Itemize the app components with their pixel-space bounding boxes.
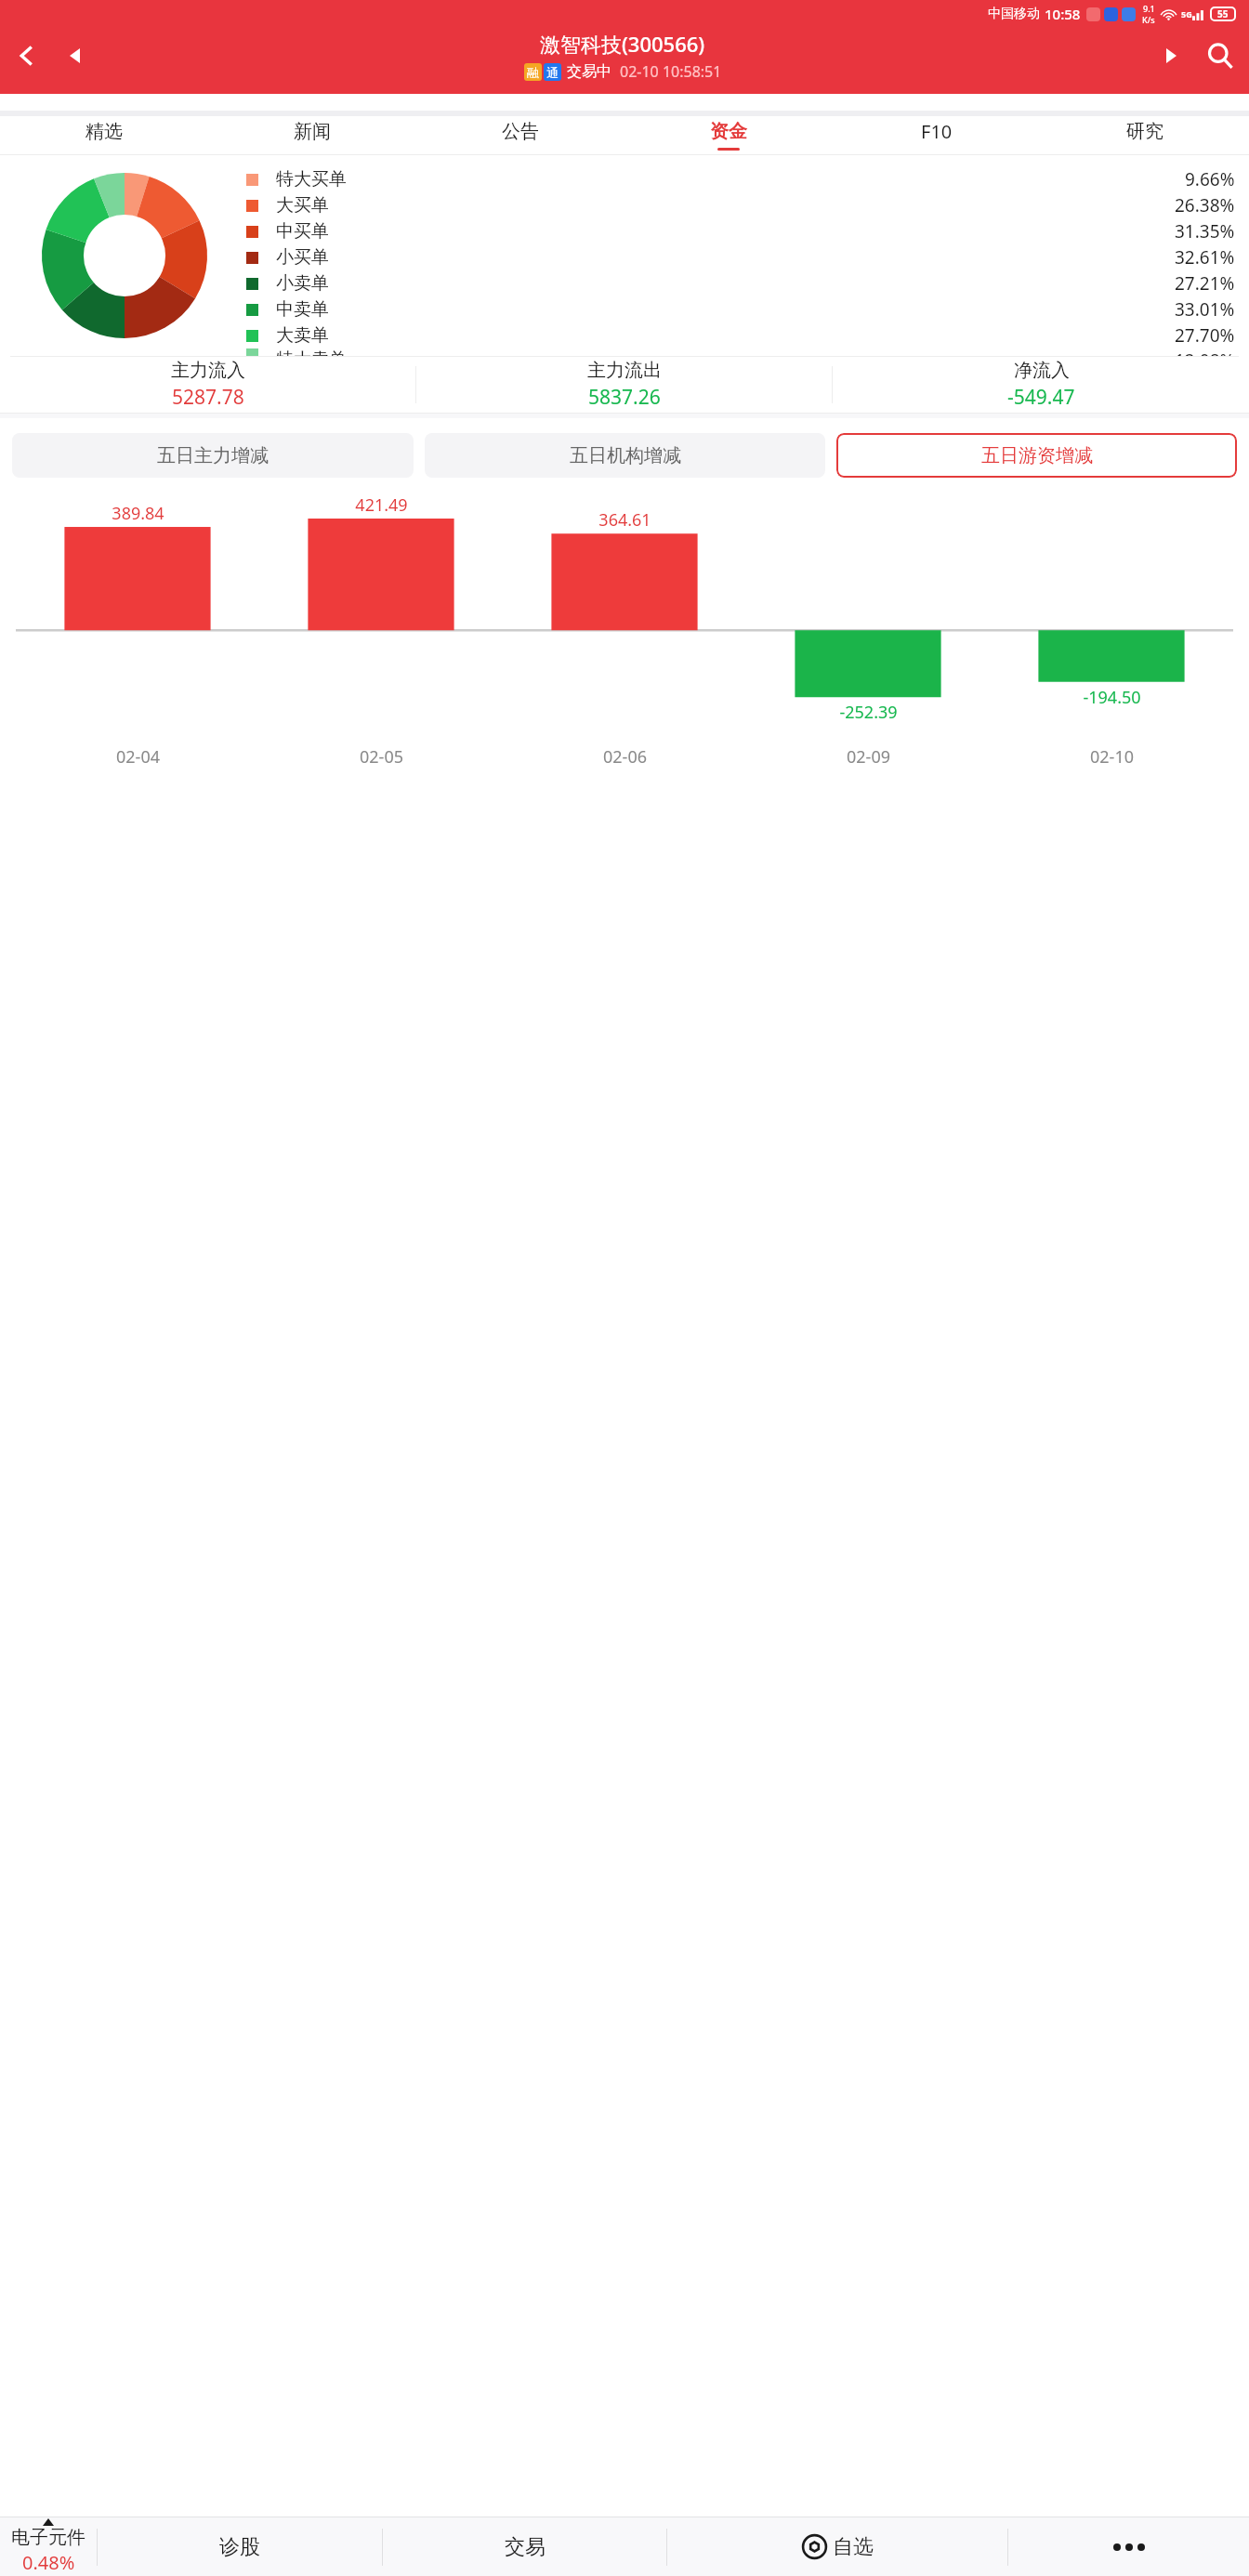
- staticText: 通: [546, 65, 559, 80]
- staticText: 融: [527, 65, 539, 80]
- staticText: 五日游资增减: [981, 444, 1093, 467]
- staticText: 大买单: [276, 194, 329, 217]
- staticText: 0.48%: [22, 2550, 75, 2575]
- staticText: 新闻: [294, 120, 331, 143]
- button[interactable]: 五日游资增减: [836, 433, 1237, 478]
- staticText: 02-09: [847, 745, 890, 769]
- staticText: 12.08%: [1175, 348, 1235, 356]
- staticText: 小买单: [276, 246, 329, 269]
- staticText: 中国移动: [988, 6, 1040, 22]
- staticText: 电子元件: [11, 2526, 85, 2549]
- staticText: 精选: [85, 120, 123, 143]
- staticText: 02-04: [116, 745, 160, 769]
- staticText: 32.61%: [1175, 245, 1235, 269]
- button[interactable]: F10: [833, 116, 1041, 154]
- button[interactable]: 研究: [1041, 116, 1249, 154]
- button[interactable]: More options: [1008, 2517, 1249, 2576]
- button[interactable]: Search: [1191, 22, 1249, 89]
- staticText: 自选: [833, 2534, 874, 2560]
- staticText: 净流入: [1014, 359, 1070, 382]
- staticText: 26.38%: [1175, 193, 1235, 217]
- staticText: 中买单: [276, 220, 329, 243]
- staticText: 大卖单: [276, 324, 329, 347]
- staticText: 激智科技(300566): [540, 30, 705, 58]
- staticText: 交易中: [567, 62, 611, 81]
- staticText: 5287.78: [172, 384, 244, 411]
- staticText: 389.84: [112, 502, 164, 525]
- staticText: 02-10: [1090, 745, 1134, 769]
- staticText: 421.49: [355, 493, 408, 517]
- button[interactable]: 激智科技(300566): [95, 30, 1150, 82]
- staticText: -194.50: [1083, 686, 1141, 709]
- button[interactable]: 中买单: [246, 218, 1235, 244]
- button[interactable]: 中卖单: [246, 296, 1235, 322]
- button[interactable]: 主力流出: [416, 357, 833, 413]
- staticText: 交易: [505, 2534, 546, 2560]
- button[interactable]: 电子元件: [0, 2517, 97, 2576]
- staticText: F10: [921, 119, 953, 144]
- button[interactable]: 自选: [667, 2517, 1007, 2576]
- staticText: 02-06: [603, 745, 647, 769]
- button[interactable]: 公告: [416, 116, 624, 154]
- staticText: 02-10 10:58:51: [620, 61, 722, 82]
- staticText: 02-05: [360, 745, 403, 769]
- button[interactable]: Back: [0, 22, 54, 89]
- staticText: 资金: [710, 120, 747, 143]
- button[interactable]: 新闻: [208, 116, 416, 154]
- staticText: 5837.26: [588, 384, 661, 411]
- staticText: 研究: [1126, 120, 1164, 143]
- staticText: 33.01%: [1175, 297, 1235, 322]
- staticText: 特大卖单: [276, 348, 347, 356]
- staticText: -252.39: [839, 701, 898, 724]
- button[interactable]: 净流入: [833, 357, 1249, 413]
- staticText: 364.61: [598, 508, 651, 532]
- staticText: 诊股: [219, 2534, 260, 2560]
- button[interactable]: 交易: [383, 2517, 666, 2576]
- staticText: 9.66%: [1185, 167, 1235, 191]
- staticText: 10:58: [1045, 5, 1081, 23]
- button[interactable]: 主力流入: [0, 357, 416, 413]
- staticText: 主力流入: [171, 359, 245, 382]
- button[interactable]: 五日主力增减: [12, 433, 414, 478]
- staticText: 五日机构增减: [570, 444, 681, 467]
- button[interactable]: 资金: [624, 116, 833, 154]
- staticText: 中卖单: [276, 298, 329, 321]
- staticText: 27.70%: [1175, 323, 1235, 348]
- staticText: 55: [1217, 7, 1229, 20]
- staticText: 5G: [1181, 8, 1192, 20]
- button[interactable]: 五日机构增减: [425, 433, 825, 478]
- button[interactable]: Next stock: [1150, 22, 1191, 89]
- staticText: -549.47: [1007, 384, 1075, 411]
- button[interactable]: 精选: [0, 116, 208, 154]
- staticText: 31.35%: [1175, 219, 1235, 243]
- button[interactable]: 大卖单: [246, 322, 1235, 348]
- staticText: 主力流出: [587, 359, 662, 382]
- staticText: 小卖单: [276, 272, 329, 295]
- staticText: K/s: [1142, 14, 1155, 25]
- button[interactable]: Previous stock: [54, 22, 95, 89]
- staticText: 五日主力增减: [157, 444, 269, 467]
- staticText: 27.21%: [1175, 271, 1235, 296]
- button[interactable]: 大买单: [246, 192, 1235, 218]
- button[interactable]: 诊股: [98, 2517, 382, 2576]
- button[interactable]: 小卖单: [246, 270, 1235, 296]
- staticText: 特大买单: [276, 168, 347, 191]
- button[interactable]: 小买单: [246, 244, 1235, 270]
- button[interactable]: 特大卖单: [246, 348, 1235, 356]
- staticText: 公告: [502, 120, 539, 143]
- button[interactable]: 特大买单: [246, 166, 1235, 192]
- staticText: 9.1: [1143, 3, 1155, 14]
